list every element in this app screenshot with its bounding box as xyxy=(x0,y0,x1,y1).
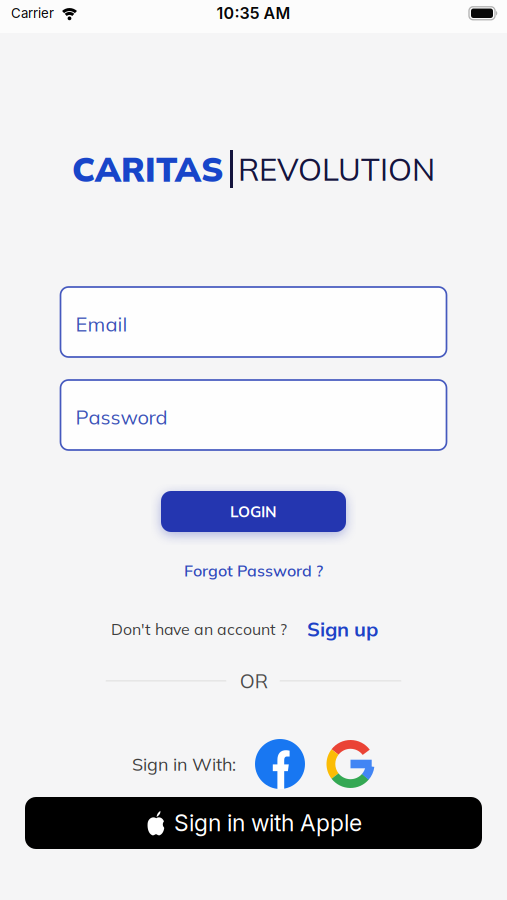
button[interactable]: Sign in with Google xyxy=(326,739,375,788)
staticText: Don't have an account ? xyxy=(111,619,287,639)
staticText: Email xyxy=(75,311,127,337)
staticText: CARITAS xyxy=(72,148,224,190)
staticText: Sign up xyxy=(307,616,378,642)
staticText: Sign in with Apple xyxy=(174,809,362,837)
staticText: OR xyxy=(240,669,268,693)
button[interactable]: Forgot Password ? xyxy=(184,557,323,584)
staticText: REVOLUTION xyxy=(238,149,435,188)
staticText: 10:35 AM xyxy=(216,4,290,23)
button[interactable]: Email xyxy=(60,287,446,357)
button[interactable]: Sign in with Facebook xyxy=(255,739,305,789)
button[interactable]: LOGIN xyxy=(161,491,346,532)
button[interactable]: Sign in with Apple xyxy=(25,797,482,849)
button[interactable]: Sign up xyxy=(307,616,378,642)
staticText: Carrier xyxy=(11,5,54,21)
button[interactable]: Password xyxy=(60,380,446,450)
staticText: Password xyxy=(75,404,167,430)
staticText: LOGIN xyxy=(230,502,277,521)
staticText: Sign in With: xyxy=(132,753,236,775)
staticText: Forgot Password ? xyxy=(184,560,323,581)
